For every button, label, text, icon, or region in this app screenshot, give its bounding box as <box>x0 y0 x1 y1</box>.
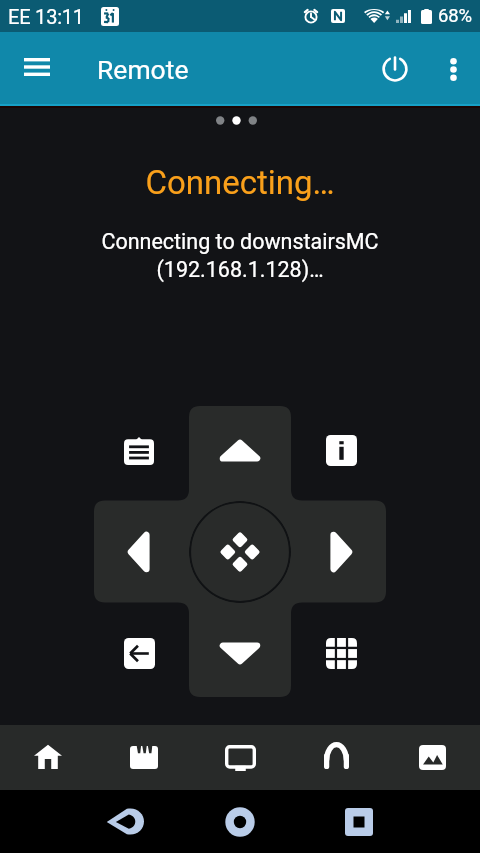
button[interactable]: Back <box>109 623 169 683</box>
button[interactable]: Music <box>288 725 384 790</box>
button[interactable]: Back <box>95 790 155 853</box>
staticText: EE 13:11 <box>8 5 84 28</box>
button[interactable]: Info <box>311 420 371 480</box>
button[interactable]: Home <box>0 725 96 790</box>
staticText: Connecting… <box>145 163 335 202</box>
button[interactable]: Home <box>210 790 270 853</box>
button[interactable]: Recent apps <box>329 790 389 853</box>
button[interactable]: Photos <box>384 725 480 790</box>
button[interactable]: OK <box>189 501 291 603</box>
button[interactable]: Up <box>189 406 291 501</box>
button[interactable]: Open navigation menu <box>9 30 65 104</box>
button[interactable]: Power <box>367 32 423 106</box>
button[interactable]: Right <box>291 501 386 603</box>
button[interactable]: Left <box>94 501 189 603</box>
button[interactable]: Movies <box>96 725 192 790</box>
button[interactable]: Keypad <box>311 623 371 683</box>
staticText: Connecting to downstairsMC (192.168.1.12… <box>95 229 385 282</box>
staticText: Remote <box>97 54 189 85</box>
button[interactable]: TV <box>192 725 288 790</box>
staticText: 68% <box>438 5 472 27</box>
button[interactable]: More options <box>429 32 477 106</box>
button[interactable]: Page indicator <box>216 116 257 125</box>
button[interactable]: Down <box>189 602 291 697</box>
button[interactable]: Menu <box>109 421 169 481</box>
